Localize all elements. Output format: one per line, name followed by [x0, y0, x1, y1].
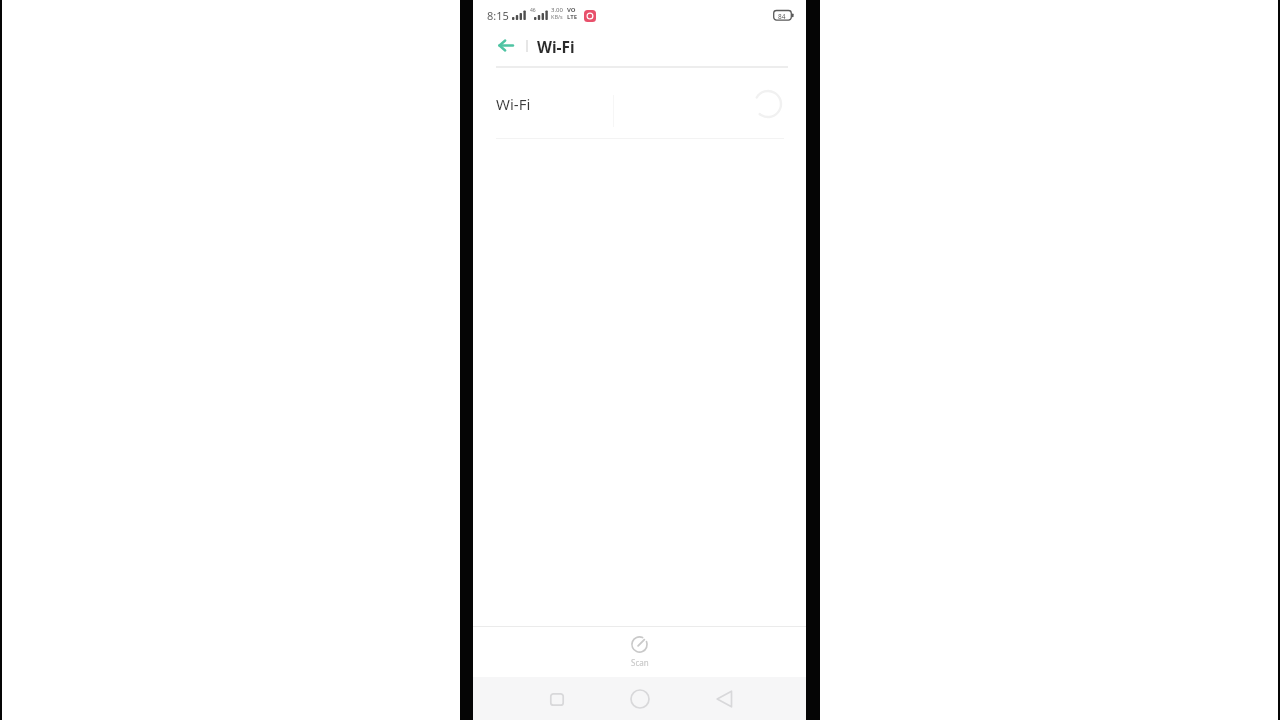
staticText: Scan — [631, 657, 649, 668]
button[interactable]: Wi-Fi — [473, 80, 806, 130]
staticText: Wi-Fi — [537, 36, 575, 57]
staticText: VO — [567, 6, 576, 14]
staticText: 3.00 — [551, 6, 563, 14]
button[interactable] — [492, 31, 520, 59]
staticText: 8:15 — [487, 8, 509, 23]
staticText: Wi-Fi — [496, 94, 531, 114]
staticText: 46 — [530, 7, 536, 14]
button[interactable] — [703, 681, 745, 717]
button[interactable]: Scan — [603, 630, 676, 674]
button[interactable] — [536, 681, 578, 717]
staticText: KB/s — [551, 13, 563, 20]
staticText: LTE — [567, 13, 578, 21]
button[interactable] — [619, 681, 661, 717]
staticText: 84 — [778, 12, 786, 21]
